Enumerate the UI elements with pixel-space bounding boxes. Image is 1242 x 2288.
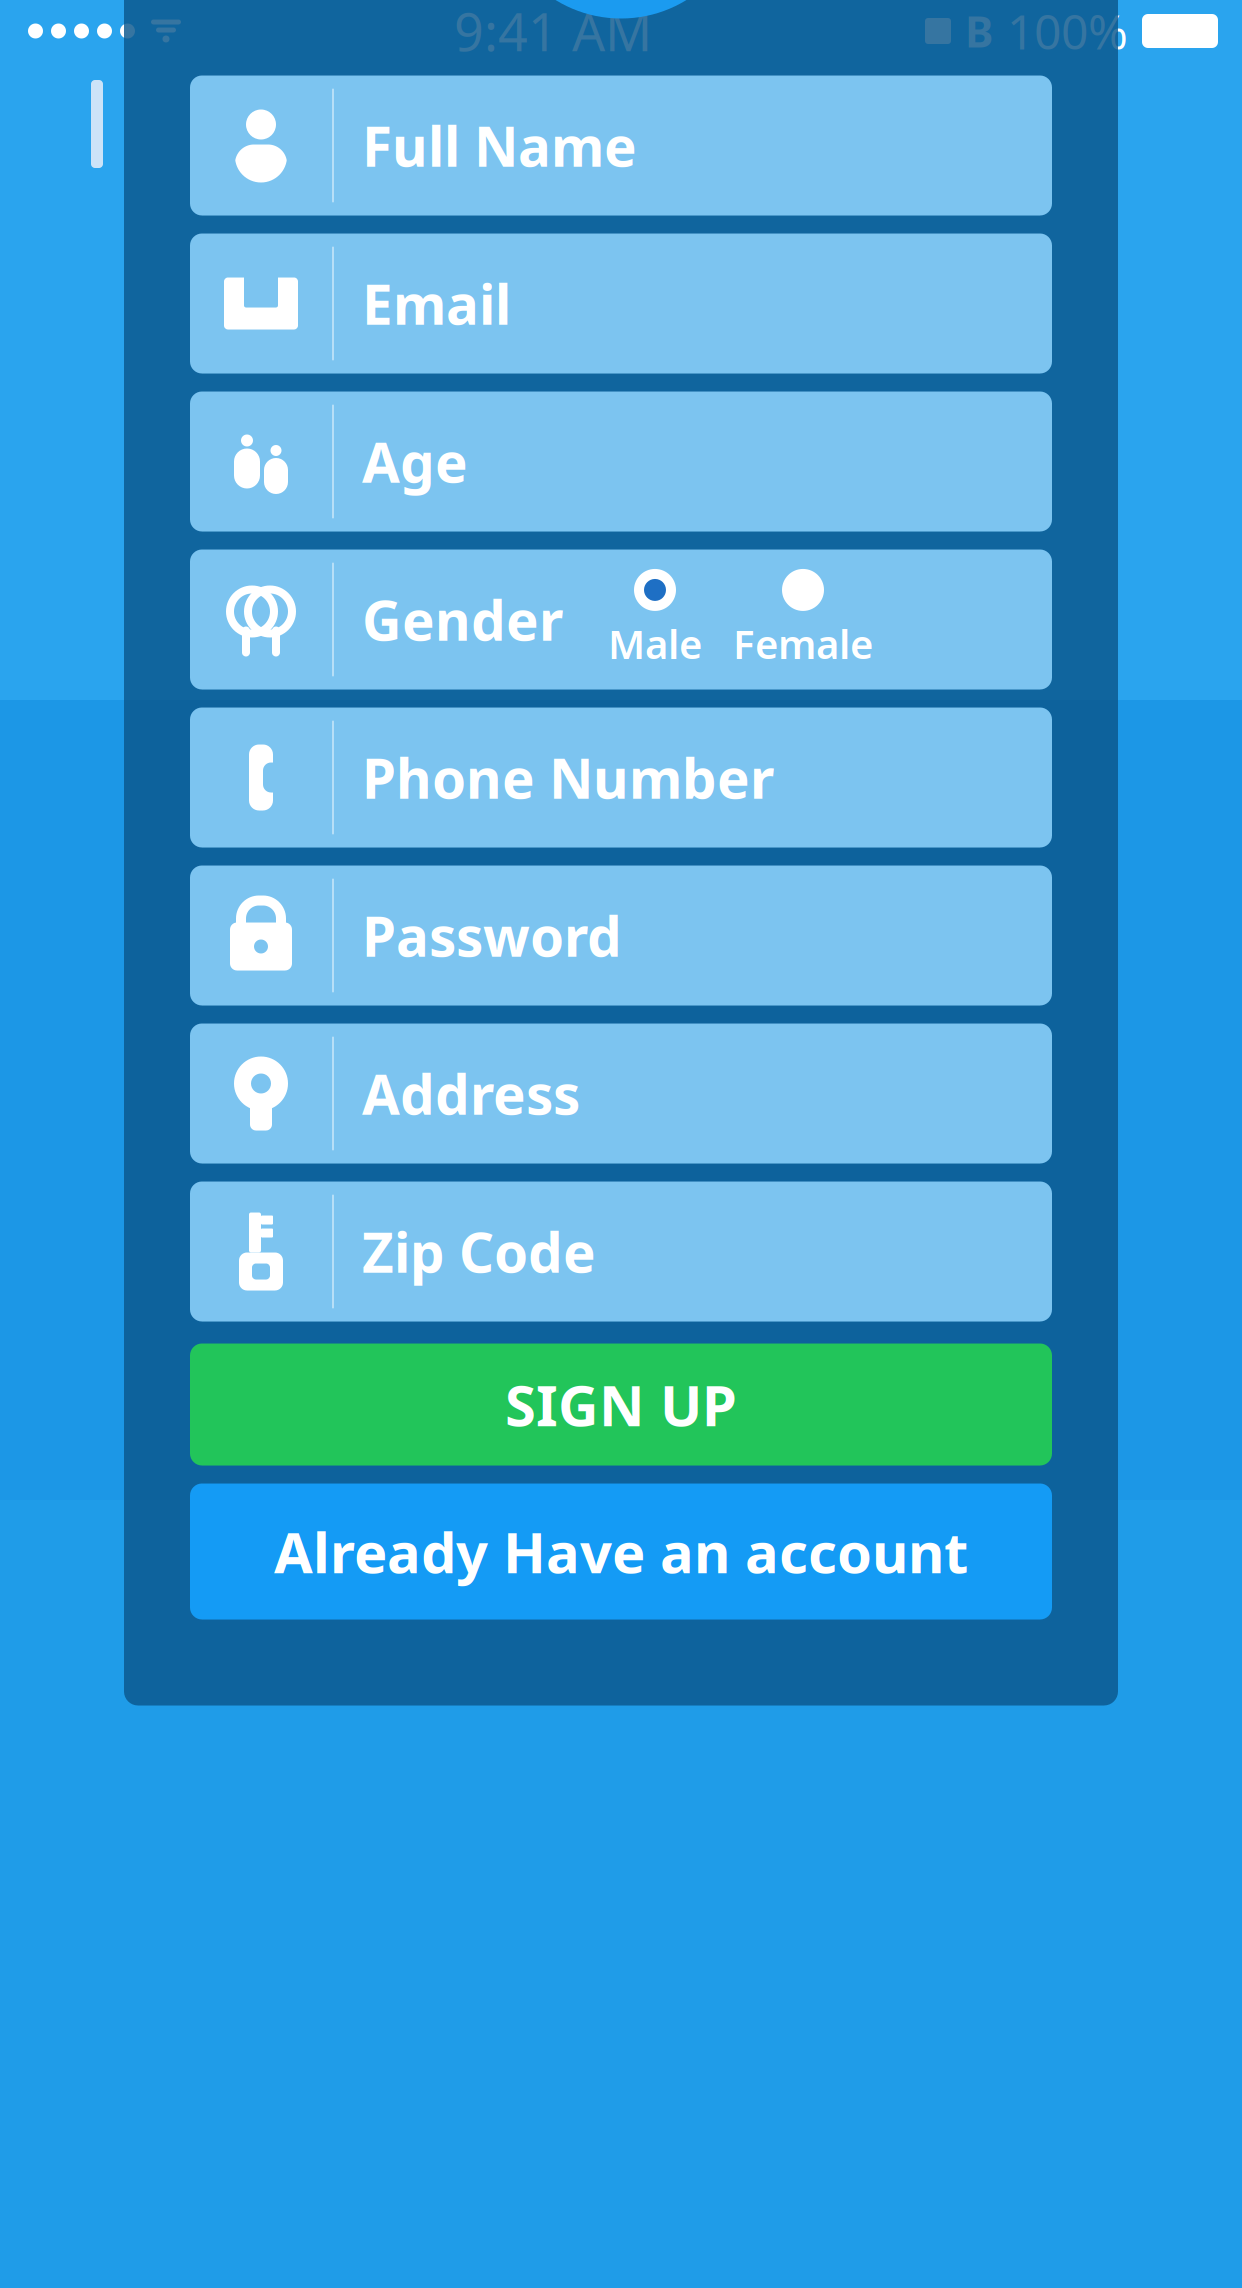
button[interactable]: Back (62, 76, 158, 172)
staticText: Gender (362, 583, 563, 656)
button[interactable]: Male (585, 569, 725, 670)
staticText: Age (362, 425, 468, 498)
button[interactable]: Age (190, 391, 1052, 531)
staticText: Already Have an account (274, 1514, 968, 1589)
button[interactable]: SIGN UP (190, 1343, 1052, 1465)
staticText: Female (733, 617, 873, 670)
button[interactable]: Zip Code (190, 1181, 1052, 1321)
staticText: B (965, 3, 993, 59)
button[interactable]: Phone Number (190, 707, 1052, 847)
staticText: 9:41 AM (454, 0, 652, 66)
button[interactable]: Female (733, 569, 873, 670)
staticText: Phone Number (362, 741, 774, 814)
staticText: Full Name (362, 109, 637, 182)
button[interactable]: Address (190, 1023, 1052, 1163)
staticText: 100% (1007, 0, 1128, 63)
staticText: Email (362, 267, 511, 340)
staticText: Password (362, 899, 622, 972)
button[interactable]: Already Have an account (190, 1483, 1052, 1619)
button[interactable]: Gender (190, 549, 1052, 689)
staticText: Zip Code (362, 1215, 596, 1288)
staticText: Address (362, 1057, 580, 1130)
button[interactable]: Full Name (190, 75, 1052, 215)
staticText: SIGN UP (505, 1367, 737, 1442)
button[interactable]: Email (190, 233, 1052, 373)
button[interactable]: Password (190, 865, 1052, 1005)
staticText: Male (608, 617, 702, 670)
